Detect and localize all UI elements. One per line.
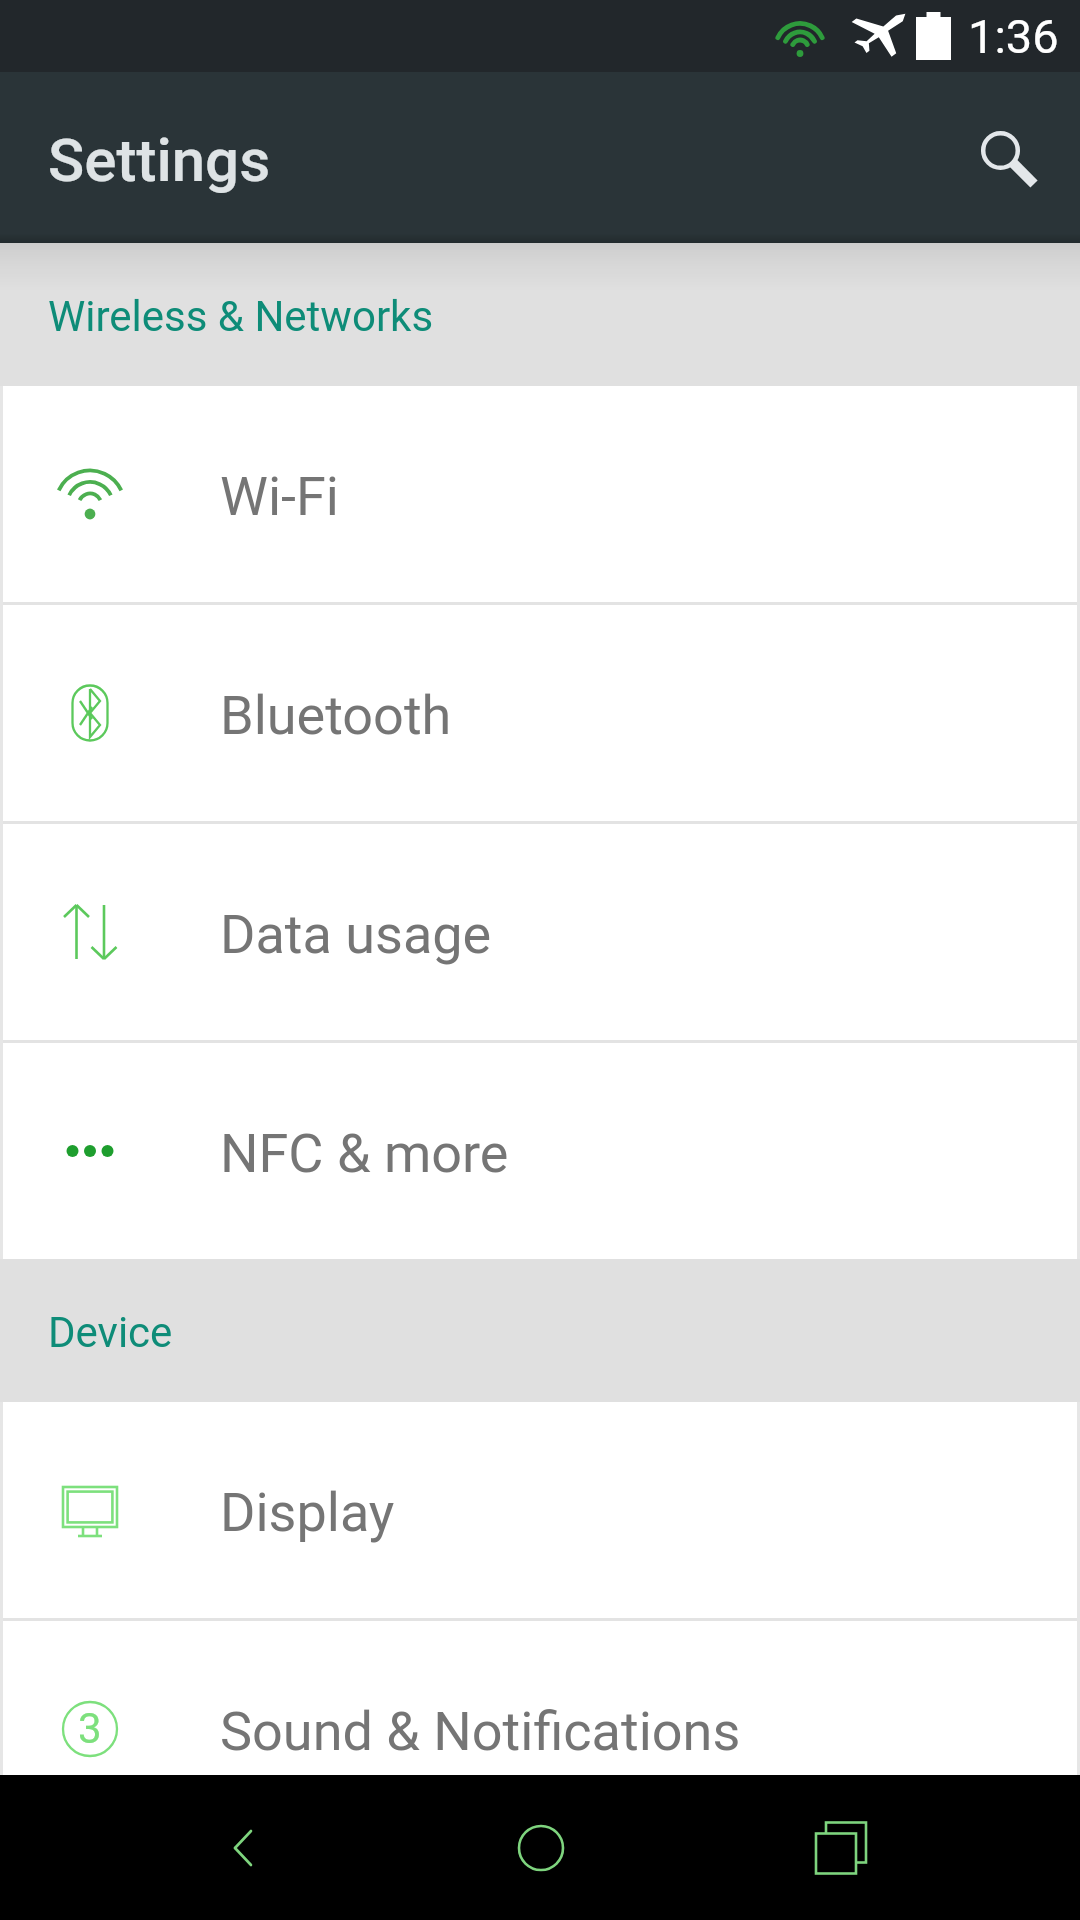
staticText: Sound & Notifications — [220, 1700, 741, 1763]
button[interactable]: 3 — [3, 1621, 1077, 1775]
button[interactable]: Bluetooth — [3, 605, 1077, 821]
button[interactable]: Home — [468, 1775, 613, 1920]
staticText: NFC & more — [220, 1122, 509, 1185]
button[interactable]: Search — [953, 103, 1063, 213]
button[interactable]: Wi-Fi — [3, 386, 1077, 602]
button[interactable]: Recent apps — [768, 1775, 913, 1920]
staticText: 3 — [78, 1704, 102, 1753]
staticText: 1:36 — [968, 9, 1059, 64]
button[interactable]: NFC & more — [3, 1043, 1077, 1259]
button[interactable]: Back — [168, 1775, 313, 1920]
staticText: Device — [48, 1308, 173, 1357]
staticText: Wi-Fi — [220, 465, 339, 528]
staticText: Display — [220, 1481, 395, 1544]
staticText: Wireless & Networks — [48, 292, 434, 341]
staticText: Bluetooth — [220, 684, 452, 747]
staticText: Data usage — [220, 903, 492, 966]
staticText: Settings — [48, 125, 271, 195]
button[interactable]: Data usage — [3, 824, 1077, 1040]
button[interactable]: Display — [3, 1402, 1077, 1618]
